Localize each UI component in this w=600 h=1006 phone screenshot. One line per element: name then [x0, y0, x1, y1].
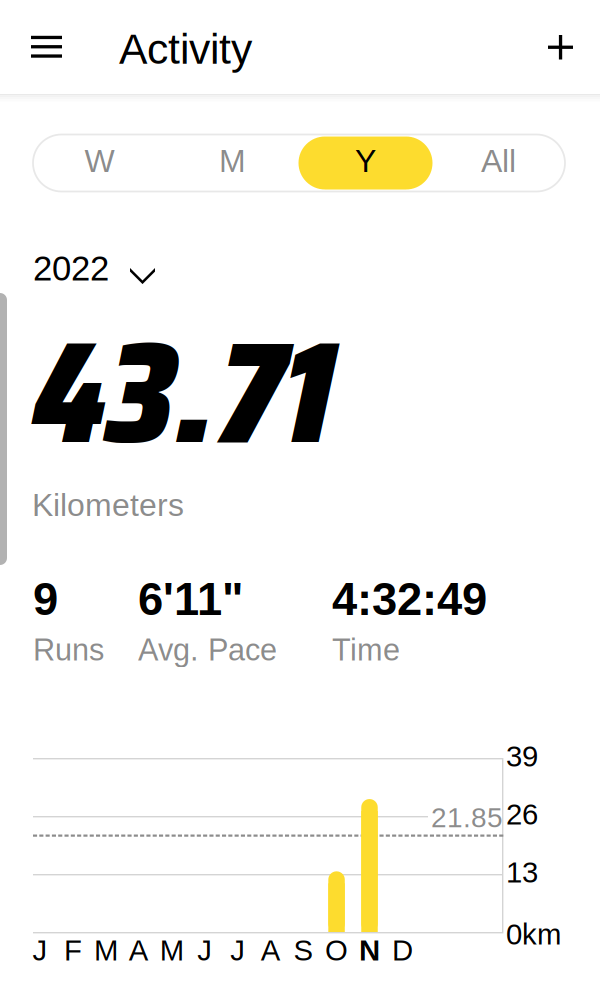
- staticText: J: [32, 934, 47, 967]
- staticText: A: [261, 934, 281, 967]
- button[interactable]: Y: [299, 134, 432, 192]
- staticText: 43.71: [32, 280, 332, 505]
- staticText: S: [294, 934, 314, 967]
- button[interactable]: All: [432, 134, 565, 192]
- staticText: 4:32:49: [332, 574, 487, 625]
- staticText: O: [325, 934, 348, 967]
- staticText: 2022: [33, 249, 109, 288]
- button[interactable]: W: [33, 134, 166, 192]
- staticText: F: [64, 934, 82, 967]
- staticText: All: [481, 143, 516, 179]
- staticText: J: [230, 934, 245, 967]
- staticText: M: [94, 934, 118, 967]
- staticText: M: [160, 934, 184, 967]
- staticText: A: [129, 934, 149, 967]
- button[interactable]: 2022: [33, 249, 168, 291]
- staticText: N: [359, 934, 380, 967]
- staticText: 0km: [506, 918, 561, 951]
- staticText: W: [84, 143, 114, 179]
- staticText: 6'11": [138, 574, 243, 625]
- staticText: Avg. Pace: [138, 633, 277, 667]
- button[interactable]: Add: [530, 0, 590, 94]
- staticText: Y: [355, 143, 376, 179]
- staticText: M: [219, 143, 246, 179]
- staticText: 39: [506, 740, 538, 773]
- staticText: 21.85: [431, 802, 503, 833]
- button[interactable]: M: [166, 134, 299, 192]
- staticText: D: [392, 934, 413, 967]
- staticText: Runs: [33, 633, 104, 667]
- staticText: Time: [332, 633, 400, 667]
- staticText: Kilometers: [32, 487, 184, 523]
- staticText: Activity: [119, 25, 252, 73]
- staticText: 13: [506, 856, 538, 889]
- button[interactable]: Menu: [0, 0, 86, 94]
- staticText: 26: [506, 798, 538, 831]
- staticText: J: [197, 934, 212, 967]
- staticText: 9: [33, 574, 58, 625]
